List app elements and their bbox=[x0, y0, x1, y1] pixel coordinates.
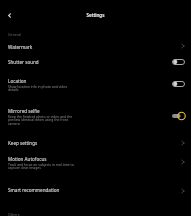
staticText: Keep settings bbox=[8, 140, 38, 146]
staticText: Others bbox=[8, 212, 20, 216]
staticText: Location bbox=[8, 78, 27, 84]
button[interactable]: Switch off bbox=[170, 78, 187, 89]
button[interactable]: Smart recommendation bbox=[0, 176, 191, 204]
button[interactable]: Keep settings bbox=[0, 135, 191, 150]
button[interactable]: Switch off bbox=[170, 56, 187, 67]
button[interactable]: Open bbox=[176, 40, 187, 51]
staticText: Shutter sound bbox=[8, 59, 39, 65]
staticText: Motion Autofocus bbox=[8, 156, 47, 162]
button[interactable]: Switch on bbox=[170, 110, 187, 121]
button[interactable]: Open bbox=[176, 185, 187, 196]
button[interactable]: Location bbox=[0, 69, 191, 100]
button[interactable]: Back bbox=[3, 9, 16, 22]
staticText: Watermark bbox=[8, 44, 33, 50]
button[interactable]: Shutter sound bbox=[0, 54, 191, 70]
staticText: Show location info in photo and video de… bbox=[8, 84, 76, 92]
button[interactable]: Open bbox=[176, 156, 187, 167]
staticText: Smart recommendation bbox=[8, 187, 60, 193]
staticText: Settings bbox=[0, 12, 191, 18]
staticText: General bbox=[8, 32, 22, 37]
button[interactable]: Watermark bbox=[0, 38, 191, 54]
button[interactable]: Mirrored selfie bbox=[0, 100, 191, 135]
button[interactable]: Motion Autofocus bbox=[0, 150, 191, 176]
staticText: Track and focus on subjects in real time… bbox=[8, 162, 76, 170]
staticText: Keep the finished photo or video and the… bbox=[8, 114, 76, 126]
staticText: Mirrored selfie bbox=[8, 108, 40, 114]
button[interactable]: Open bbox=[176, 137, 187, 148]
